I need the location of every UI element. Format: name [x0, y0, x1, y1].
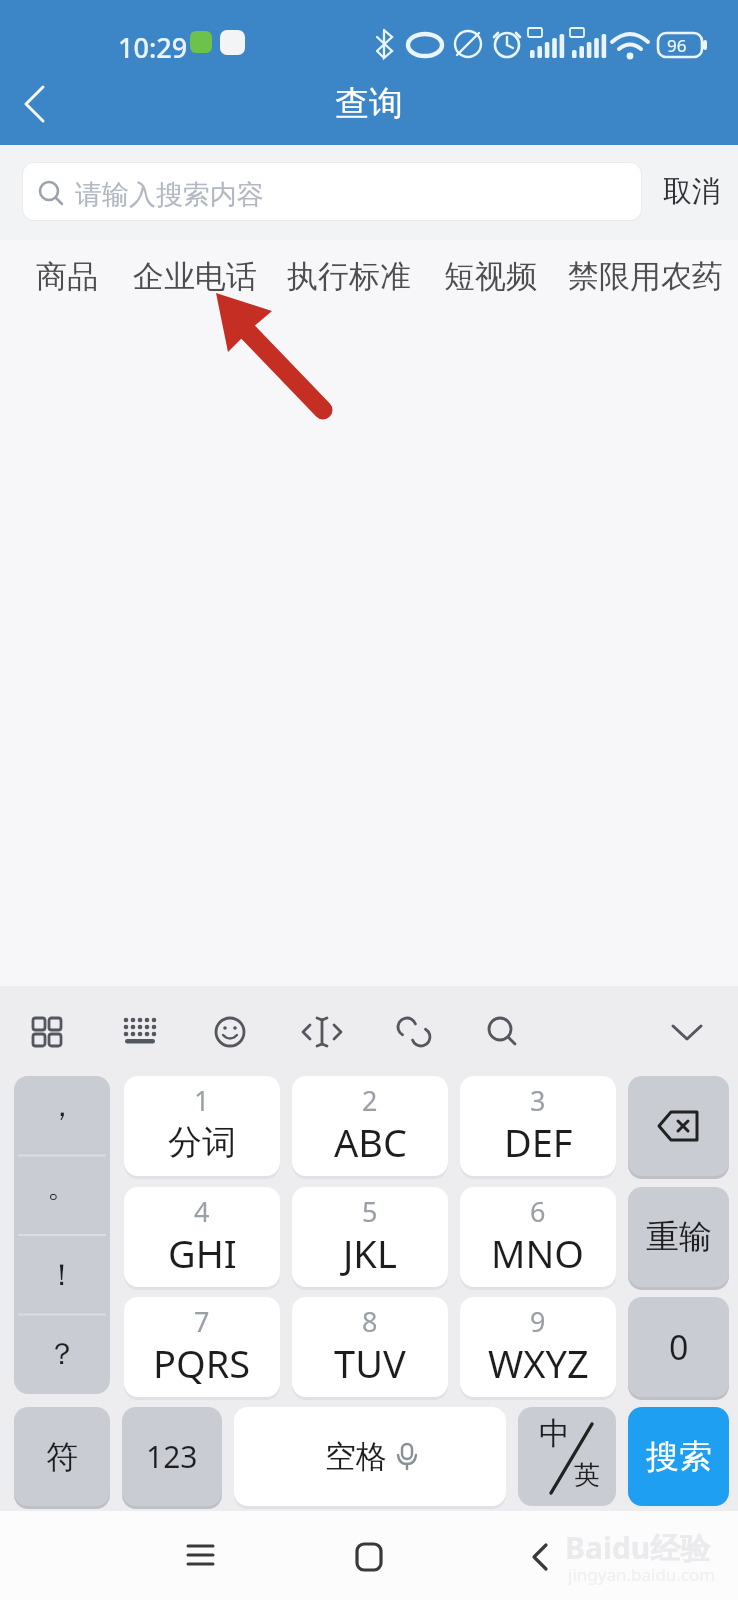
staticText: 3: [530, 1082, 546, 1116]
staticText: 4: [194, 1193, 210, 1227]
button[interactable]: [509, 1526, 569, 1586]
button[interactable]: 取消: [652, 165, 732, 217]
staticText: 9: [530, 1303, 546, 1337]
button[interactable]: 1: [124, 1076, 280, 1176]
staticText: Baidu经验: [565, 1527, 711, 1568]
button[interactable]: ？: [14, 1314, 110, 1394]
button[interactable]: 6: [460, 1187, 616, 1287]
button[interactable]: 短视频: [440, 254, 540, 298]
staticText: 10:29: [118, 29, 188, 66]
staticText: jingyan.baidu.com: [568, 1563, 716, 1586]
staticText: 请输入搜索内容: [75, 178, 264, 212]
button[interactable]: 符: [14, 1407, 110, 1506]
staticText: DEF: [504, 1116, 573, 1168]
button[interactable]: [198, 998, 262, 1064]
staticText: 5: [362, 1193, 378, 1227]
button[interactable]: 2: [292, 1076, 448, 1176]
staticText: JKL: [343, 1227, 397, 1279]
button[interactable]: 5: [292, 1187, 448, 1287]
button[interactable]: [170, 1526, 230, 1586]
button[interactable]: 。: [14, 1147, 110, 1227]
staticText: ABC: [334, 1116, 407, 1168]
button[interactable]: [382, 998, 446, 1064]
button[interactable]: 重输: [628, 1187, 729, 1287]
staticText: 中: [539, 1414, 570, 1453]
staticText: 96: [667, 34, 687, 57]
staticText: 分词: [168, 1121, 236, 1164]
button[interactable]: 企业电话: [130, 254, 260, 298]
staticText: 123: [146, 1436, 198, 1477]
button[interactable]: 3: [460, 1076, 616, 1176]
button[interactable]: 搜索: [628, 1407, 729, 1506]
button[interactable]: 中: [518, 1407, 616, 1506]
staticText: 查询: [335, 82, 403, 125]
button[interactable]: 空格: [234, 1407, 506, 1506]
button[interactable]: 123: [122, 1407, 222, 1506]
button[interactable]: [15, 998, 79, 1064]
button[interactable]: 7: [124, 1297, 280, 1397]
button[interactable]: [655, 998, 719, 1064]
button[interactable]: ，: [14, 1076, 110, 1146]
staticText: TUV: [334, 1337, 406, 1389]
button[interactable]: 8: [292, 1297, 448, 1397]
button[interactable]: [290, 998, 354, 1064]
button[interactable]: 请输入搜索内容: [23, 163, 641, 220]
staticText: GHI: [168, 1227, 237, 1279]
staticText: 商品: [36, 257, 98, 296]
staticText: 符: [46, 1437, 78, 1477]
staticText: 0: [669, 1324, 689, 1370]
button[interactable]: 商品: [31, 254, 103, 298]
staticText: MNO: [491, 1227, 585, 1279]
staticText: 禁限用农药: [568, 257, 723, 296]
staticText: WXYZ: [488, 1337, 589, 1389]
staticText: 1: [194, 1082, 210, 1116]
staticText: 执行标准: [287, 257, 411, 296]
staticText: 7: [194, 1303, 210, 1337]
staticText: 取消: [663, 173, 721, 210]
button[interactable]: 禁限用农药: [564, 254, 726, 298]
button[interactable]: [628, 1076, 729, 1176]
staticText: 。: [47, 1168, 77, 1206]
staticText: 搜索: [646, 1436, 712, 1478]
button[interactable]: 0: [628, 1297, 729, 1397]
staticText: ？: [47, 1335, 77, 1373]
button[interactable]: ！: [14, 1235, 110, 1315]
button[interactable]: [108, 998, 172, 1064]
staticText: 2: [362, 1082, 378, 1116]
staticText: ！: [47, 1256, 77, 1294]
button[interactable]: 执行标准: [284, 254, 414, 298]
staticText: 企业电话: [133, 257, 257, 296]
button[interactable]: [339, 1526, 399, 1586]
button[interactable]: 9: [460, 1297, 616, 1397]
staticText: 英: [574, 1459, 600, 1492]
button[interactable]: [10, 78, 60, 134]
button[interactable]: 4: [124, 1187, 280, 1287]
staticText: 6: [530, 1193, 546, 1227]
staticText: ，: [47, 1087, 77, 1125]
staticText: 空格: [325, 1437, 387, 1476]
staticText: 短视频: [444, 257, 537, 296]
staticText: 8: [362, 1303, 378, 1337]
button[interactable]: ，: [14, 1076, 110, 1394]
button[interactable]: [470, 998, 534, 1064]
staticText: 重输: [646, 1216, 712, 1258]
staticText: PQRS: [153, 1337, 251, 1389]
